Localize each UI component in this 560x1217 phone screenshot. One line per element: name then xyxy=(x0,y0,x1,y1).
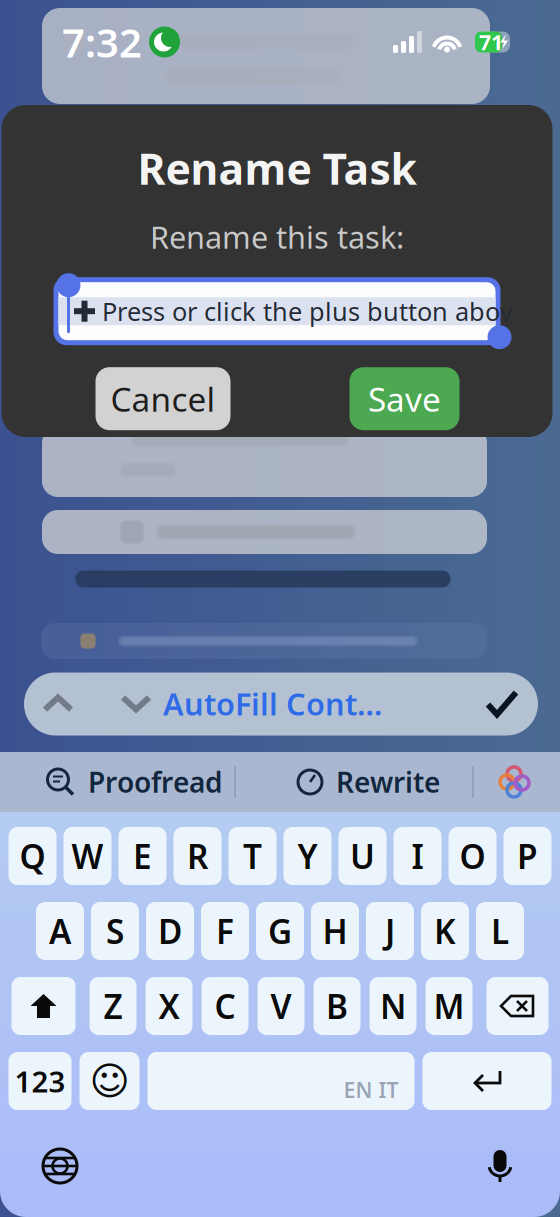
staticText: Y xyxy=(297,834,317,878)
staticText: H xyxy=(322,909,347,953)
button[interactable]: D xyxy=(146,902,194,960)
button[interactable]: V xyxy=(257,977,304,1035)
button[interactable]: Y xyxy=(283,827,331,885)
staticText: Save xyxy=(368,377,441,421)
staticText: K xyxy=(434,909,456,953)
staticText: T xyxy=(243,834,262,878)
button[interactable]: Next field xyxy=(105,672,167,734)
staticText: W xyxy=(71,834,103,878)
staticText: M xyxy=(433,984,464,1028)
button[interactable]: K xyxy=(421,902,469,960)
staticText: N xyxy=(380,984,406,1028)
staticText: Rewrite xyxy=(336,763,440,801)
button[interactable]: 123 xyxy=(8,1052,71,1110)
button[interactable]: Done xyxy=(471,672,533,734)
staticText: Press or click the plus button abov xyxy=(102,294,513,328)
button[interactable]: U xyxy=(338,827,386,885)
staticText: C xyxy=(214,984,235,1028)
button[interactable]: AutoFill Contact xyxy=(163,672,383,734)
button[interactable]: Emoji xyxy=(79,1052,139,1110)
button[interactable]: F xyxy=(201,902,249,960)
staticText: Proofread xyxy=(88,763,223,801)
staticText: D xyxy=(158,909,182,953)
staticText: A xyxy=(49,909,71,953)
staticText: G xyxy=(268,909,292,953)
button[interactable]: A xyxy=(36,902,84,960)
button[interactable]: Apple Intelligence xyxy=(492,759,538,805)
button[interactable]: C xyxy=(201,977,248,1035)
staticText: F xyxy=(216,909,234,953)
button[interactable]: Previous field xyxy=(27,672,89,734)
button[interactable]: S xyxy=(91,902,139,960)
staticText: Rename Task xyxy=(137,140,416,196)
button[interactable]: L xyxy=(476,902,524,960)
staticText: Q xyxy=(19,834,45,878)
staticText: 71 xyxy=(479,28,503,56)
button[interactable]: T xyxy=(228,827,276,885)
button[interactable]: Z xyxy=(89,977,136,1035)
button[interactable]: Cancel xyxy=(95,367,230,430)
staticText: Rename this task: xyxy=(150,216,404,257)
button[interactable]: B xyxy=(313,977,360,1035)
staticText: P xyxy=(517,834,538,878)
staticText: B xyxy=(326,984,348,1028)
staticText: 7:32 xyxy=(62,15,142,68)
staticText: X xyxy=(158,984,179,1028)
staticText: Cancel xyxy=(110,377,215,421)
button[interactable]: Q xyxy=(8,827,56,885)
staticText: S xyxy=(106,909,124,953)
staticText: O xyxy=(459,834,485,878)
button[interactable]: Delete xyxy=(486,977,548,1035)
staticText: 123 xyxy=(14,1061,65,1100)
button[interactable]: G xyxy=(256,902,304,960)
staticText: V xyxy=(270,984,291,1028)
staticText: ☺ xyxy=(89,1059,129,1103)
staticText: AutoFill Contact xyxy=(163,683,383,724)
button[interactable]: M xyxy=(425,977,472,1035)
button[interactable]: R xyxy=(173,827,221,885)
button[interactable]: Rewrite xyxy=(297,754,457,810)
button[interactable]: Next keyboard xyxy=(35,1141,85,1191)
button[interactable]: N xyxy=(369,977,416,1035)
staticText: R xyxy=(187,834,208,878)
button[interactable]: Return xyxy=(422,1052,551,1110)
button[interactable]: J xyxy=(366,902,414,960)
button[interactable]: O xyxy=(448,827,496,885)
staticText: I xyxy=(411,834,423,878)
button[interactable]: H xyxy=(311,902,359,960)
button[interactable]: Shift xyxy=(11,977,75,1035)
staticText: Z xyxy=(103,984,122,1028)
staticText: U xyxy=(350,834,375,878)
button[interactable]: P xyxy=(503,827,551,885)
button[interactable]: W xyxy=(63,827,111,885)
button[interactable]: I xyxy=(393,827,441,885)
button[interactable]: E xyxy=(118,827,166,885)
staticText: L xyxy=(491,909,509,953)
staticText: EN IT xyxy=(343,1076,398,1104)
button[interactable]: Space xyxy=(147,1052,414,1110)
button[interactable]: X xyxy=(145,977,192,1035)
staticText: E xyxy=(133,834,152,878)
staticText: J xyxy=(385,909,395,953)
button[interactable]: Dictation xyxy=(475,1141,525,1191)
button[interactable]: Save xyxy=(349,367,459,430)
button[interactable]: Proofread xyxy=(47,754,237,810)
